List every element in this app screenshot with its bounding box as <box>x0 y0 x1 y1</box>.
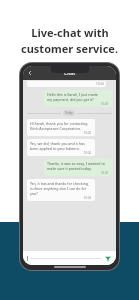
staticText: Today <box>65 111 73 115</box>
button[interactable]: Hello this is Sarah, I just made <box>44 90 112 107</box>
staticText: Hello this is Sarah, I just made <box>47 92 98 97</box>
staticText: customer service. <box>21 41 118 56</box>
button[interactable]: Yes, we did, thank you and it has <box>27 139 95 156</box>
staticText: 10:26 <box>84 131 92 135</box>
staticText: 10:26 <box>84 196 92 200</box>
staticText: Hi Sarah, thank you for contacting <box>30 121 88 126</box>
staticText: Thanks, it was so easy, I wanted to <box>47 161 105 166</box>
button[interactable]: Thanks, it was so easy, I wanted to <box>44 159 112 176</box>
staticText: 10:26 <box>101 171 109 175</box>
staticText: Yes, we did, thank you and it has <box>30 141 85 146</box>
button[interactable]: Send <box>103 254 112 263</box>
button[interactable]: Hi Sarah, thank you for contacting <box>27 119 95 136</box>
staticText: make sure it posted today. <box>47 166 92 171</box>
staticText: Live-chat with <box>31 25 109 40</box>
staticText: 10:26 <box>84 151 92 155</box>
staticText: 10:26 <box>101 102 109 106</box>
staticText: you? <box>30 191 38 196</box>
staticText: Chat <box>64 70 76 77</box>
staticText: been applied to your balance. <box>30 146 81 151</box>
button[interactable]: Yes, it has and thanks for checking, <box>27 179 95 201</box>
staticText: Kitch Acceptance Corporation. <box>30 126 81 131</box>
staticText: my payment, did you get it? <box>47 97 94 102</box>
button[interactable]: Back <box>24 67 36 79</box>
staticText: 10:24 <box>96 82 104 86</box>
staticText: is there anything else I can do for <box>30 186 87 191</box>
staticText: Yes, it has and thanks for checking, <box>30 181 90 186</box>
